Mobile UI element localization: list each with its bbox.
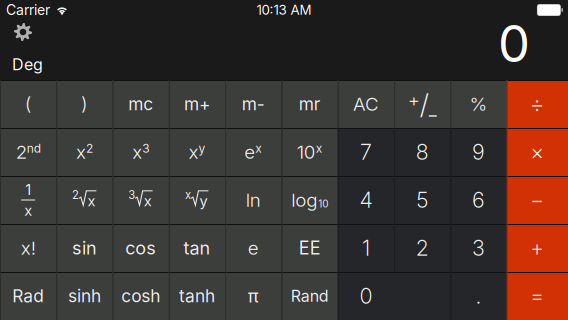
button[interactable]: log base ten <box>281 176 338 224</box>
staticText: x <box>76 141 86 163</box>
button[interactable]: 3 <box>450 224 507 272</box>
staticText: cosh <box>121 285 160 306</box>
button[interactable]: Square root of x <box>56 176 113 224</box>
staticText: = <box>530 283 544 309</box>
staticText: mr <box>299 93 321 114</box>
button[interactable]: x cubed <box>113 128 169 176</box>
staticText: 9 <box>472 139 485 165</box>
staticText: _ <box>429 98 437 119</box>
staticText: Carrier <box>6 1 50 18</box>
staticText: y <box>199 192 207 210</box>
staticText: x <box>132 141 142 163</box>
button[interactable]: 4 <box>338 176 394 224</box>
button[interactable]: EE <box>281 224 338 272</box>
staticText: AC <box>353 93 379 115</box>
staticText: nd <box>27 141 41 156</box>
staticText: 10 <box>297 141 316 163</box>
button[interactable]: x to the y <box>169 128 225 176</box>
staticText: ( <box>25 93 32 115</box>
staticText: 3 <box>128 188 135 202</box>
button[interactable]: ten to the x <box>281 128 338 176</box>
staticText: 8 <box>416 139 429 165</box>
staticText: 2 <box>16 141 27 163</box>
button[interactable]: Factorial <box>0 224 56 272</box>
button[interactable]: Decimal point <box>450 272 507 320</box>
button[interactable]: mc <box>113 80 169 128</box>
button[interactable]: m- <box>225 80 281 128</box>
button[interactable]: 7 <box>338 128 394 176</box>
staticText: m+ <box>184 93 210 114</box>
button[interactable]: Plus minus <box>394 80 450 128</box>
staticText: Deg <box>12 55 43 74</box>
button[interactable]: Rand <box>281 272 338 320</box>
button[interactable]: Settings <box>11 18 35 44</box>
staticText: ÷ <box>530 90 545 118</box>
button[interactable]: tan <box>169 224 225 272</box>
staticText: x <box>144 192 152 210</box>
button[interactable]: m+ <box>169 80 225 128</box>
staticText: x <box>185 188 191 202</box>
staticText: 10 <box>318 198 328 210</box>
staticText: 7 <box>360 139 372 165</box>
button[interactable]: 2 <box>394 224 450 272</box>
button[interactable]: x squared <box>56 128 113 176</box>
staticText: 3 <box>472 235 485 261</box>
staticText: cos <box>125 237 156 259</box>
staticText: x <box>316 141 323 156</box>
button[interactable]: Multiply <box>507 128 568 176</box>
button[interactable]: tanh <box>169 272 225 320</box>
button[interactable]: Plus <box>507 224 568 272</box>
staticText: x <box>24 201 32 219</box>
button[interactable]: 6 <box>450 176 507 224</box>
button[interactable]: e <box>225 224 281 272</box>
button[interactable]: Second function <box>0 128 56 176</box>
button[interactable]: 8 <box>394 128 450 176</box>
button[interactable]: One over x <box>0 176 56 224</box>
button[interactable]: Zero <box>338 272 450 320</box>
button[interactable]: AC <box>338 80 394 128</box>
button[interactable]: x root of y <box>169 176 225 224</box>
staticText: x <box>87 192 95 210</box>
staticText: 4 <box>359 187 372 213</box>
button[interactable]: ln <box>225 176 281 224</box>
staticText: mc <box>128 93 153 114</box>
button[interactable]: Equals <box>507 272 568 320</box>
button[interactable]: ( <box>0 80 56 128</box>
button[interactable]: 1 <box>338 224 394 272</box>
staticText: 1 <box>25 181 31 198</box>
staticText: 0 <box>498 13 530 74</box>
button[interactable]: % <box>450 80 507 128</box>
button[interactable]: cosh <box>113 272 169 320</box>
staticText: % <box>470 93 488 115</box>
staticText: 0 <box>359 283 372 309</box>
button[interactable]: 9 <box>450 128 507 176</box>
staticText: log <box>291 189 317 211</box>
staticText: tanh <box>179 285 215 306</box>
staticText: π <box>248 285 259 307</box>
staticText: tan <box>183 237 210 259</box>
button[interactable]: sin <box>56 224 113 272</box>
staticText: 10:13 AM <box>256 2 311 18</box>
button[interactable]: sinh <box>56 272 113 320</box>
staticText: 2 <box>86 141 93 156</box>
button[interactable]: Cube root of x <box>113 176 169 224</box>
button[interactable]: cos <box>113 224 169 272</box>
button[interactable]: Divide <box>507 80 568 128</box>
button[interactable]: mr <box>281 80 338 128</box>
button[interactable]: 5 <box>394 176 450 224</box>
staticText: Rad <box>12 285 44 306</box>
staticText: x <box>188 141 198 163</box>
staticText: / <box>420 87 429 121</box>
staticText: . <box>475 283 481 309</box>
button[interactable]: ) <box>56 80 113 128</box>
staticText: ln <box>246 189 261 211</box>
button[interactable]: Minus <box>507 176 568 224</box>
button[interactable]: Pi <box>225 272 281 320</box>
staticText: 2 <box>72 188 79 202</box>
button[interactable]: e to the x <box>225 128 281 176</box>
staticText: 1 <box>362 235 370 261</box>
staticText: Rand <box>291 286 329 306</box>
button[interactable]: Rad <box>0 272 56 320</box>
staticText: + <box>408 89 420 111</box>
staticText: e <box>248 237 259 259</box>
